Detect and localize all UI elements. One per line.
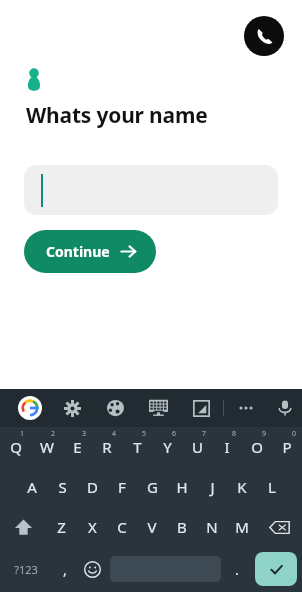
staticText: H [176,477,188,497]
staticText: T [133,437,142,457]
staticText: J [210,477,215,497]
staticText: 6 [172,429,177,439]
button[interactable]: G [137,467,167,507]
staticText: A [27,477,37,497]
staticText: S [58,477,67,497]
staticText: ?123 [14,562,38,577]
staticText: R [102,437,112,457]
staticText: I [224,437,230,457]
staticText: C [117,517,127,537]
staticText: 3 [82,429,87,439]
button[interactable]: Y [152,427,182,467]
staticText: 9 [262,429,267,439]
button[interactable]: M [227,507,257,547]
staticText: 0 [292,429,297,439]
button[interactable]: R [92,427,122,467]
button[interactable]: N [197,507,227,547]
staticText: Continue [46,242,110,261]
button[interactable]: B [167,507,197,547]
button[interactable]: Keyboard settings [51,389,94,427]
button[interactable]: H [167,467,197,507]
button[interactable]: More options [224,389,267,427]
staticText: . [235,560,239,579]
button[interactable]: D [77,467,107,507]
button[interactable]: L [257,467,287,507]
button[interactable]: V [137,507,167,547]
button[interactable]: , [52,547,78,591]
staticText: B [177,517,187,537]
staticText: O [251,437,263,457]
button[interactable] [24,165,278,215]
staticText: 4 [112,429,117,439]
button[interactable]: Shift [0,507,46,547]
button[interactable]: F [107,467,137,507]
staticText: N [206,517,218,537]
button[interactable]: T [122,427,152,467]
button[interactable]: X [77,507,107,547]
staticText: 2 [51,429,56,439]
button[interactable]: Themes [94,389,137,427]
staticText: M [235,517,249,537]
staticText: Q [10,437,22,457]
staticText: W [40,437,54,457]
button[interactable]: E [62,427,92,467]
button[interactable]: ?123 [0,547,52,591]
button[interactable]: W [31,427,62,467]
button[interactable]: I [212,427,242,467]
button[interactable]: Stickers [180,389,223,427]
button[interactable]: Backspace [257,507,302,547]
staticText: Y [163,437,172,457]
staticText: P [282,437,292,457]
button[interactable]: A [16,467,47,507]
staticText: , [63,560,67,579]
staticText: 5 [142,429,147,439]
button[interactable]: S [47,467,77,507]
button[interactable]: C [107,507,137,547]
staticText: D [87,477,98,497]
staticText: K [237,477,247,497]
button[interactable]: . [224,547,250,591]
button[interactable]: K [227,467,257,507]
button[interactable]: Enter [255,552,297,586]
button[interactable]: Emoji [78,547,107,591]
staticText: 1 [20,429,25,439]
staticText: E [73,437,82,457]
button[interactable]: Keyboard modes [137,389,180,427]
button[interactable]: Z [46,507,77,547]
staticText: F [118,477,126,497]
button[interactable]: P [272,427,302,467]
staticText: V [147,517,157,537]
staticText: Whats your name [26,101,208,130]
staticText: Z [57,517,66,537]
staticText: 8 [232,429,237,439]
button[interactable]: Voice input [267,389,302,427]
button[interactable]: Continue [24,230,156,273]
button[interactable]: Google Assistant [8,389,51,427]
button[interactable]: U [182,427,212,467]
button[interactable]: Q [0,427,31,467]
staticText: 7 [202,429,207,439]
staticText: G [147,477,158,497]
button[interactable]: J [197,467,227,507]
button[interactable]: O [242,427,272,467]
staticText: U [192,437,203,457]
staticText: L [268,477,276,497]
button[interactable]: Call support [244,16,284,56]
staticText: X [88,517,97,537]
